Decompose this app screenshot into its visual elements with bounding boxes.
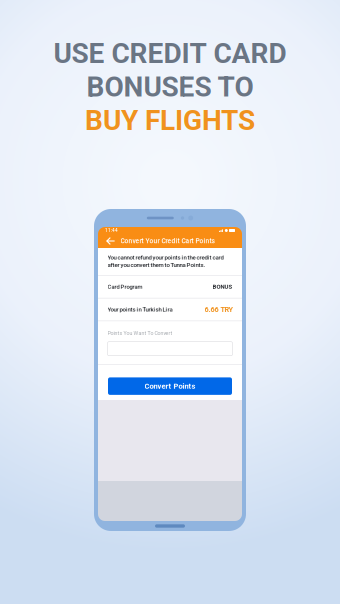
staticText: after you convert them to Tunna Points. [107, 261, 205, 268]
staticText: Convert Points [144, 382, 195, 390]
staticText: You cannot refund your points in the cre… [107, 254, 223, 261]
staticText: Convert Your Credit Cart Points [120, 237, 214, 245]
staticText: BONUS [212, 283, 232, 290]
staticText: Card Program [107, 283, 142, 290]
staticText: BUY FLIGHTS [85, 104, 255, 137]
staticText: Your points in Turkish Lira [107, 306, 172, 313]
staticText: USE CREDIT CARD [53, 37, 286, 70]
staticText: Points You Want To Convert [107, 330, 172, 336]
staticText: 11:44 [105, 228, 118, 233]
staticText: 6.66 TRY [204, 305, 232, 314]
button[interactable]: Convert Your Credit Cart Points [98, 234, 242, 248]
button[interactable]: Convert Points [108, 377, 232, 395]
staticText: BONUSES TO [86, 70, 253, 103]
